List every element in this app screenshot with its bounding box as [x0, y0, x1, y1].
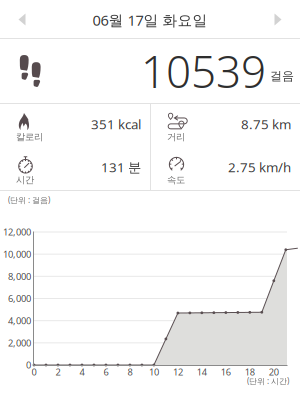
staticText: 거리: [167, 131, 185, 143]
staticText: 8: [127, 366, 132, 378]
button[interactable]: Previous day: [1, 0, 43, 39]
staticText: 4,000: [8, 314, 31, 327]
staticText: 8,000: [8, 270, 31, 282]
staticText: 10: [149, 366, 159, 378]
staticText: 351 kcal: [91, 115, 141, 133]
staticText: 2: [55, 366, 60, 378]
staticText: (단위 : 시간): [247, 376, 289, 386]
staticText: 4: [79, 366, 84, 378]
staticText: 18: [245, 366, 255, 378]
staticText: 칼로리: [16, 131, 43, 143]
staticText: 0: [31, 366, 36, 378]
staticText: 0: [26, 359, 31, 371]
staticText: 06월 17일 화요일: [92, 10, 207, 30]
staticText: (단위 : 걸음): [8, 195, 50, 205]
staticText: 8.75 km: [241, 115, 291, 133]
staticText: 2.75 km/h: [228, 158, 291, 176]
staticText: 시간: [16, 174, 34, 186]
button[interactable]: Next day: [257, 0, 299, 39]
staticText: 131 분: [101, 158, 141, 176]
staticText: 12,000: [3, 226, 31, 238]
staticText: 속도: [167, 174, 185, 186]
staticText: 2,000: [8, 337, 31, 349]
staticText: 걸음: [270, 69, 294, 83]
staticText: 6,000: [8, 292, 31, 305]
staticText: 20: [269, 366, 279, 378]
staticText: 16: [221, 366, 231, 378]
staticText: 14: [197, 366, 207, 378]
staticText: 6: [103, 366, 108, 378]
staticText: 12: [173, 366, 183, 378]
staticText: 10539: [141, 42, 266, 100]
staticText: 10,000: [3, 248, 31, 260]
